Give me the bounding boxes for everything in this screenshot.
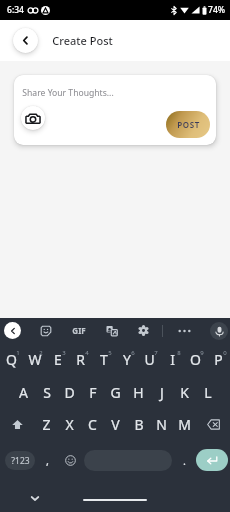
button[interactable]: Z: [35, 411, 58, 437]
button[interactable]: C: [81, 411, 104, 437]
button[interactable]: POST: [166, 111, 210, 138]
staticText: P: [214, 350, 223, 369]
staticText: U: [144, 350, 155, 369]
staticText: E: [54, 350, 62, 369]
staticText: Share Your Thoughts...: [22, 87, 114, 99]
staticText: Z: [42, 415, 51, 434]
staticText: Y: [123, 350, 131, 369]
button[interactable]: ,: [38, 449, 56, 471]
button[interactable]: R: [69, 346, 92, 372]
staticText: M: [178, 415, 191, 434]
staticText: I: [170, 350, 175, 369]
staticText: 2: [39, 349, 43, 357]
staticText: B: [134, 415, 144, 434]
staticText: 3: [62, 349, 66, 357]
staticText: N: [156, 415, 167, 434]
button[interactable]: Space: [84, 450, 172, 471]
staticText: 74%: [208, 4, 225, 16]
staticText: X: [65, 415, 74, 434]
staticText: C: [88, 415, 97, 434]
button[interactable]: V: [104, 411, 127, 437]
button[interactable]: Settings: [135, 322, 152, 339]
staticText: ,: [46, 453, 49, 468]
staticText: R: [76, 350, 85, 369]
button[interactable]: H: [127, 379, 150, 405]
button[interactable]: Hide keyboard: [27, 490, 43, 506]
staticText: F: [89, 383, 97, 402]
staticText: J: [160, 383, 164, 402]
staticText: POST: [177, 119, 200, 130]
staticText: 0: [223, 349, 227, 357]
staticText: Q: [6, 350, 17, 369]
button[interactable]: Y: [115, 346, 138, 372]
button[interactable]: G: [104, 379, 127, 405]
staticText: 1: [16, 349, 20, 357]
staticText: 4: [85, 349, 89, 357]
staticText: V: [111, 415, 120, 434]
button[interactable]: Shift: [0, 411, 35, 437]
button[interactable]: ?123: [5, 451, 35, 470]
staticText: 9: [200, 349, 204, 357]
button[interactable]: N: [150, 411, 173, 437]
staticText: 6: [131, 349, 135, 357]
button[interactable]: F: [81, 379, 104, 405]
button[interactable]: T: [92, 346, 115, 372]
staticText: L: [204, 383, 212, 402]
staticText: 7: [154, 349, 158, 357]
button[interactable]: Collapse toolbar: [4, 322, 21, 339]
staticText: Create Post: [52, 33, 113, 48]
button[interactable]: Q: [0, 346, 23, 372]
staticText: 6:34: [7, 4, 24, 16]
button[interactable]: O: [184, 346, 207, 372]
button[interactable]: GIF: [68, 322, 90, 339]
staticText: ?123: [11, 455, 30, 467]
staticText: 8: [177, 349, 181, 357]
button[interactable]: M: [173, 411, 196, 437]
button[interactable]: W: [23, 346, 46, 372]
staticText: G: [110, 383, 121, 402]
button[interactable]: E: [46, 346, 69, 372]
staticText: W: [28, 350, 42, 369]
button[interactable]: U: [138, 346, 161, 372]
staticText: A: [19, 383, 28, 402]
button[interactable]: Voice input: [210, 322, 228, 340]
button[interactable]: More options: [177, 323, 192, 338]
button[interactable]: K: [173, 379, 196, 405]
button[interactable]: A: [12, 379, 35, 405]
staticText: K: [180, 383, 189, 402]
button[interactable]: .: [176, 449, 192, 471]
staticText: T: [100, 350, 108, 369]
button[interactable]: Translate: [103, 322, 120, 339]
button[interactable]: L: [196, 379, 219, 405]
staticText: S: [43, 383, 51, 402]
button[interactable]: Emoji: [60, 449, 80, 471]
button[interactable]: D: [58, 379, 81, 405]
staticText: D: [64, 383, 75, 402]
button[interactable]: Enter: [196, 449, 228, 471]
button[interactable]: Back: [13, 28, 38, 53]
button[interactable]: Add photo: [21, 106, 45, 130]
button[interactable]: J: [150, 379, 173, 405]
button[interactable]: P: [207, 346, 230, 372]
button[interactable]: S: [35, 379, 58, 405]
button[interactable]: Stickers: [37, 322, 54, 339]
button[interactable]: X: [58, 411, 81, 437]
button[interactable]: B: [127, 411, 150, 437]
button[interactable]: I: [161, 346, 184, 372]
staticText: O: [190, 350, 201, 369]
staticText: 5: [108, 349, 112, 357]
staticText: H: [133, 383, 144, 402]
button[interactable]: Backspace: [196, 411, 230, 437]
staticText: GIF: [72, 325, 86, 336]
staticText: .: [183, 453, 186, 468]
